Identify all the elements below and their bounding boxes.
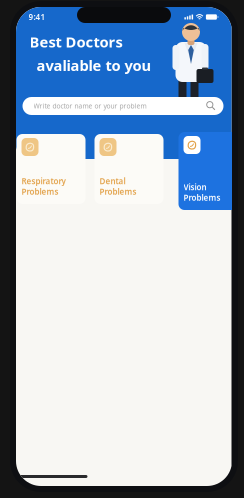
staticText: Problems: [99, 186, 136, 197]
staticText: Best Doctors: [29, 32, 122, 51]
button[interactable]: Respiratory: [16, 134, 85, 204]
staticText: Respiratory: [21, 176, 65, 186]
staticText: Dental: [99, 176, 125, 186]
staticText: avaliable to you: [36, 55, 151, 75]
staticText: Vision: [183, 182, 206, 192]
button[interactable]: Vision: [178, 132, 244, 210]
button[interactable]: Write doctor name or your problem: [22, 97, 223, 115]
staticText: 9:41: [28, 12, 45, 22]
button[interactable]: Dental: [94, 134, 163, 204]
staticText: Write doctor name or your problem: [33, 102, 146, 110]
staticText: Problems: [183, 192, 220, 203]
staticText: Problems: [21, 186, 58, 197]
